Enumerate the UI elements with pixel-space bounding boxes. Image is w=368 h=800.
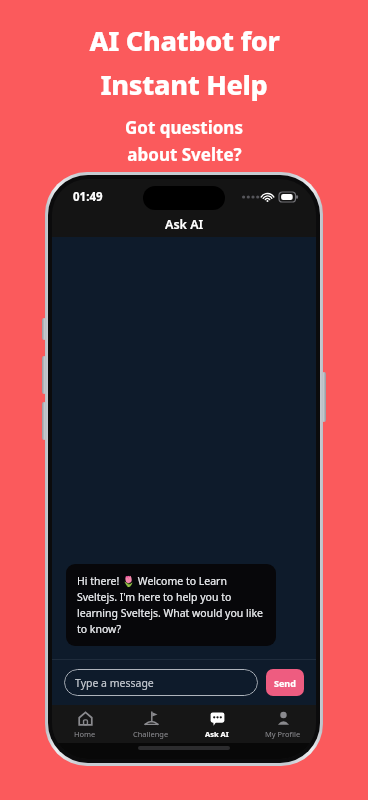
staticText: AI Chatbot for xyxy=(89,22,280,59)
staticText: Ask AI xyxy=(205,729,229,739)
button[interactable]: Hi there! 🌷 Welcome to Learn Sveltejs. I… xyxy=(66,564,276,646)
staticText: Got questions xyxy=(125,116,243,139)
staticText: about Svelte? xyxy=(127,143,242,166)
staticText: Hi there! 🌷 Welcome to Learn Sveltejs. I… xyxy=(77,574,265,636)
button[interactable]: Challenge xyxy=(118,705,184,743)
staticText: Home xyxy=(74,729,96,739)
staticText: Type a message xyxy=(75,676,154,690)
staticText: Challenge xyxy=(133,729,169,739)
button[interactable]: Send xyxy=(266,669,304,696)
staticText: Instant Help xyxy=(100,66,268,103)
staticText: 01:49 xyxy=(73,189,103,205)
button[interactable]: Type a message xyxy=(64,669,258,696)
button[interactable]: Home xyxy=(52,705,118,743)
button[interactable]: My Profile xyxy=(250,705,316,743)
staticText: Ask AI xyxy=(165,216,204,233)
button[interactable]: Ask AI xyxy=(184,705,250,743)
staticText: Send xyxy=(274,677,296,689)
staticText: My Profile xyxy=(265,729,301,739)
